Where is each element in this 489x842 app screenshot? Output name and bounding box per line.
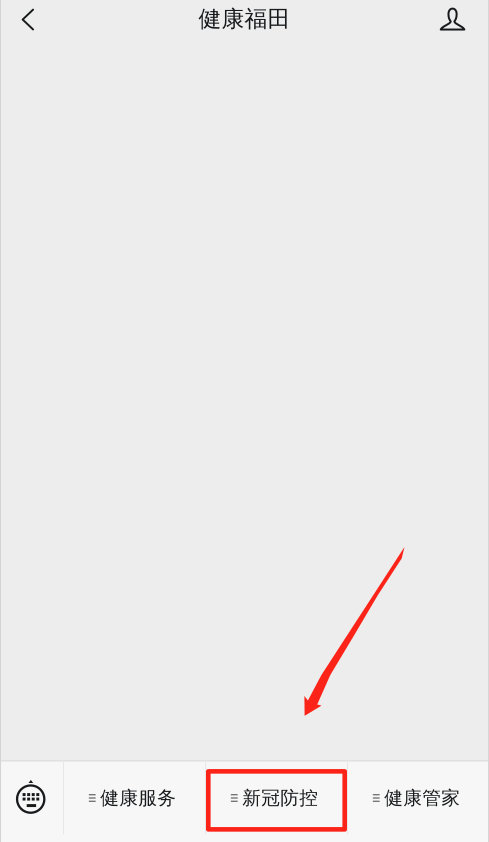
button[interactable]: 健康服务 — [64, 761, 205, 834]
staticText: 新冠防控 — [242, 786, 318, 810]
staticText: 健康服务 — [100, 786, 176, 810]
staticText: 健康管家 — [384, 786, 460, 810]
button[interactable]: 新冠防控 — [206, 761, 347, 834]
staticText: 健康福田 — [198, 5, 290, 33]
button[interactable]: 健康管家 — [348, 761, 489, 834]
button[interactable]: Back — [0, 0, 55, 38]
button[interactable]: Account — [416, 0, 489, 38]
button[interactable]: Keyboard — [0, 761, 63, 834]
